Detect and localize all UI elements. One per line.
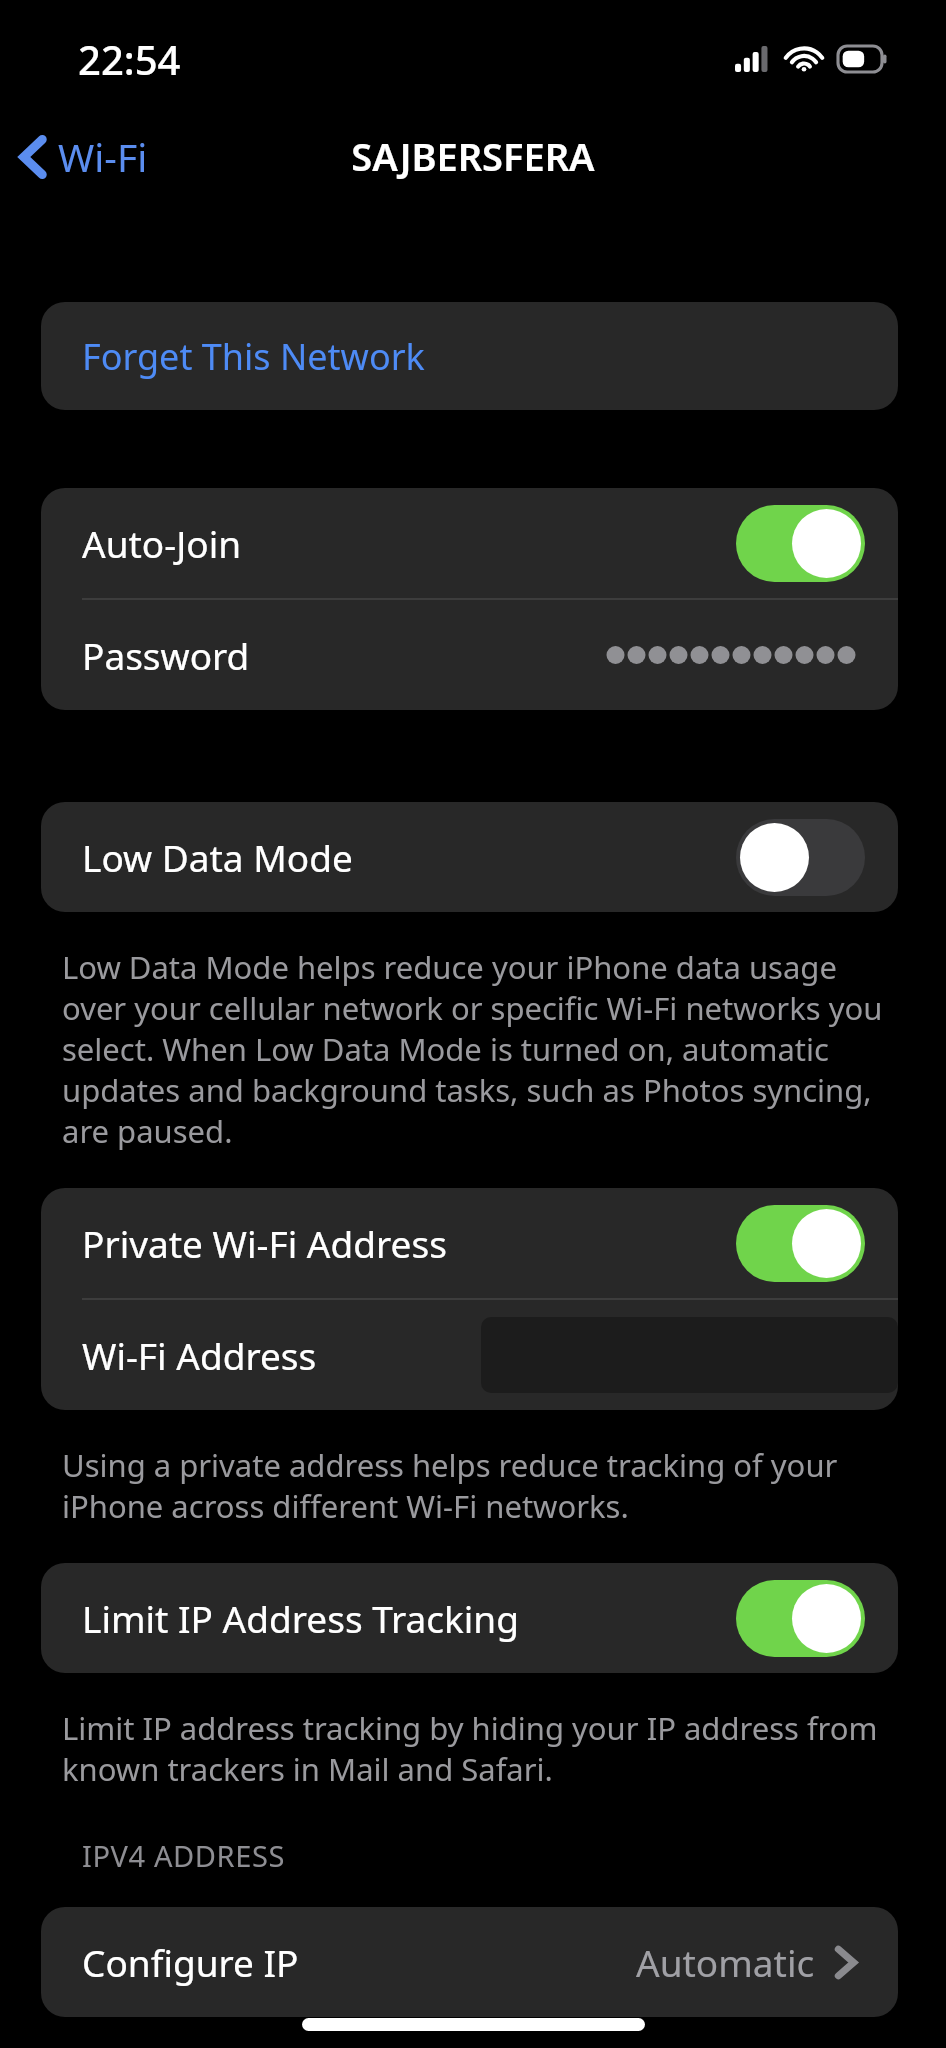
button[interactable]: Toggle on	[736, 1580, 865, 1657]
button[interactable]: Forget This Network	[41, 302, 898, 410]
button[interactable]: Auto-Join	[41, 488, 898, 598]
staticText: Private Wi-Fi Address	[82, 1218, 447, 1268]
staticText: IPV4 ADDRESS	[82, 1836, 285, 1875]
staticText: 22:54	[78, 32, 181, 86]
staticText: Password	[82, 630, 250, 680]
staticText: Auto-Join	[82, 518, 242, 568]
staticText: Wi-Fi Address	[82, 1330, 317, 1380]
button[interactable]: Wi-Fi	[0, 122, 166, 191]
button[interactable]: Toggle on	[736, 505, 865, 582]
staticText: Limit IP address tracking by hiding your…	[62, 1707, 884, 1790]
staticText: Automatic	[636, 1937, 815, 1987]
button[interactable]: Private Wi-Fi Address	[41, 1188, 898, 1298]
button[interactable]: Password	[41, 600, 898, 710]
button[interactable]: Wi-Fi Address	[41, 1300, 898, 1410]
button[interactable]: Toggle off	[736, 819, 865, 896]
staticText: Configure IP	[82, 1937, 299, 1987]
staticText: Limit IP Address Tracking	[82, 1593, 519, 1643]
staticText: Wi-Fi	[58, 130, 148, 183]
staticText: Forget This Network	[82, 332, 425, 381]
staticText: Low Data Mode helps reduce your iPhone d…	[62, 946, 884, 1152]
staticText: Using a private address helps reduce tra…	[62, 1444, 884, 1527]
button[interactable]: Toggle on	[736, 1205, 865, 1282]
button[interactable]: Limit IP Address Tracking	[41, 1563, 898, 1673]
staticText: SAJBERSFERA	[351, 130, 595, 182]
button[interactable]: Configure IP	[41, 1907, 898, 2017]
staticText: Low Data Mode	[82, 832, 353, 882]
button[interactable]: Low Data Mode	[41, 802, 898, 912]
